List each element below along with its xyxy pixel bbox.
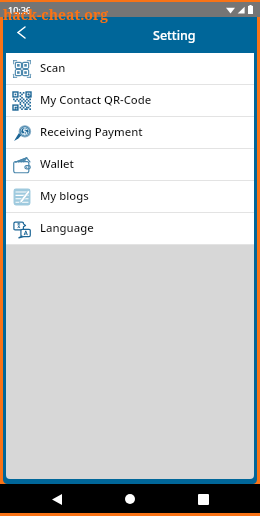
button[interactable]: Home (116, 485, 144, 513)
staticText: Wallet (40, 156, 74, 171)
button[interactable]: Receiving Payment (6, 117, 254, 148)
staticText: 10:36 (8, 4, 32, 16)
button[interactable]: Language (6, 213, 254, 244)
staticText: Language (40, 220, 94, 235)
button[interactable]: Recent apps (188, 485, 216, 513)
staticText: Scan (40, 60, 66, 75)
staticText: Setting (153, 27, 196, 44)
button[interactable]: Back (9, 22, 35, 48)
staticText: My blogs (40, 188, 89, 203)
button[interactable]: Wallet (6, 149, 254, 180)
button[interactable]: My blogs (6, 181, 254, 212)
button[interactable]: My Contact QR-Code (6, 85, 254, 116)
button[interactable]: Scan (6, 53, 254, 84)
staticText: Receiving Payment (40, 124, 143, 139)
button[interactable]: Back (44, 485, 72, 513)
staticText: My Contact QR-Code (40, 92, 152, 107)
staticText: hack-cheat.org (3, 5, 109, 24)
